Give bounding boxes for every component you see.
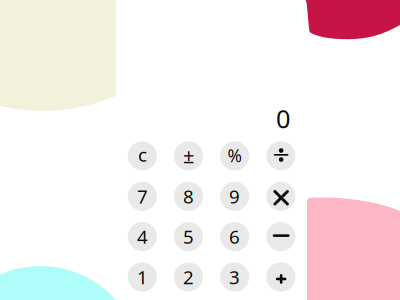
staticText: 9 (229, 184, 240, 209)
button[interactable]: 6 (220, 222, 249, 251)
staticText: 0 (276, 102, 290, 135)
button[interactable]: 7 (128, 182, 157, 211)
staticText: 8 (183, 184, 194, 209)
button[interactable]: 9 (220, 182, 249, 211)
button[interactable]: Plus (266, 262, 295, 292)
button[interactable]: Minus (266, 222, 295, 251)
staticText: 4 (137, 224, 148, 249)
button[interactable]: 5 (174, 222, 203, 251)
staticText: 1 (137, 265, 148, 289)
staticText: 3 (229, 265, 240, 289)
staticText: 6 (229, 224, 240, 249)
button[interactable]: Divide (266, 141, 295, 170)
staticText: 5 (183, 224, 194, 249)
button[interactable]: 2 (174, 262, 203, 292)
staticText: 2 (183, 265, 194, 289)
staticText: c (138, 142, 147, 167)
staticText: ± (183, 142, 194, 169)
button[interactable]: 3 (220, 262, 249, 292)
button[interactable]: % (220, 141, 249, 170)
staticText: 7 (137, 184, 148, 209)
button[interactable]: 1 (128, 262, 157, 292)
staticText: % (228, 144, 242, 167)
button[interactable]: c (128, 141, 157, 170)
button[interactable]: ± (174, 141, 203, 170)
button[interactable]: Multiply (266, 182, 295, 211)
button[interactable]: 8 (174, 182, 203, 211)
button[interactable]: 4 (128, 222, 157, 251)
